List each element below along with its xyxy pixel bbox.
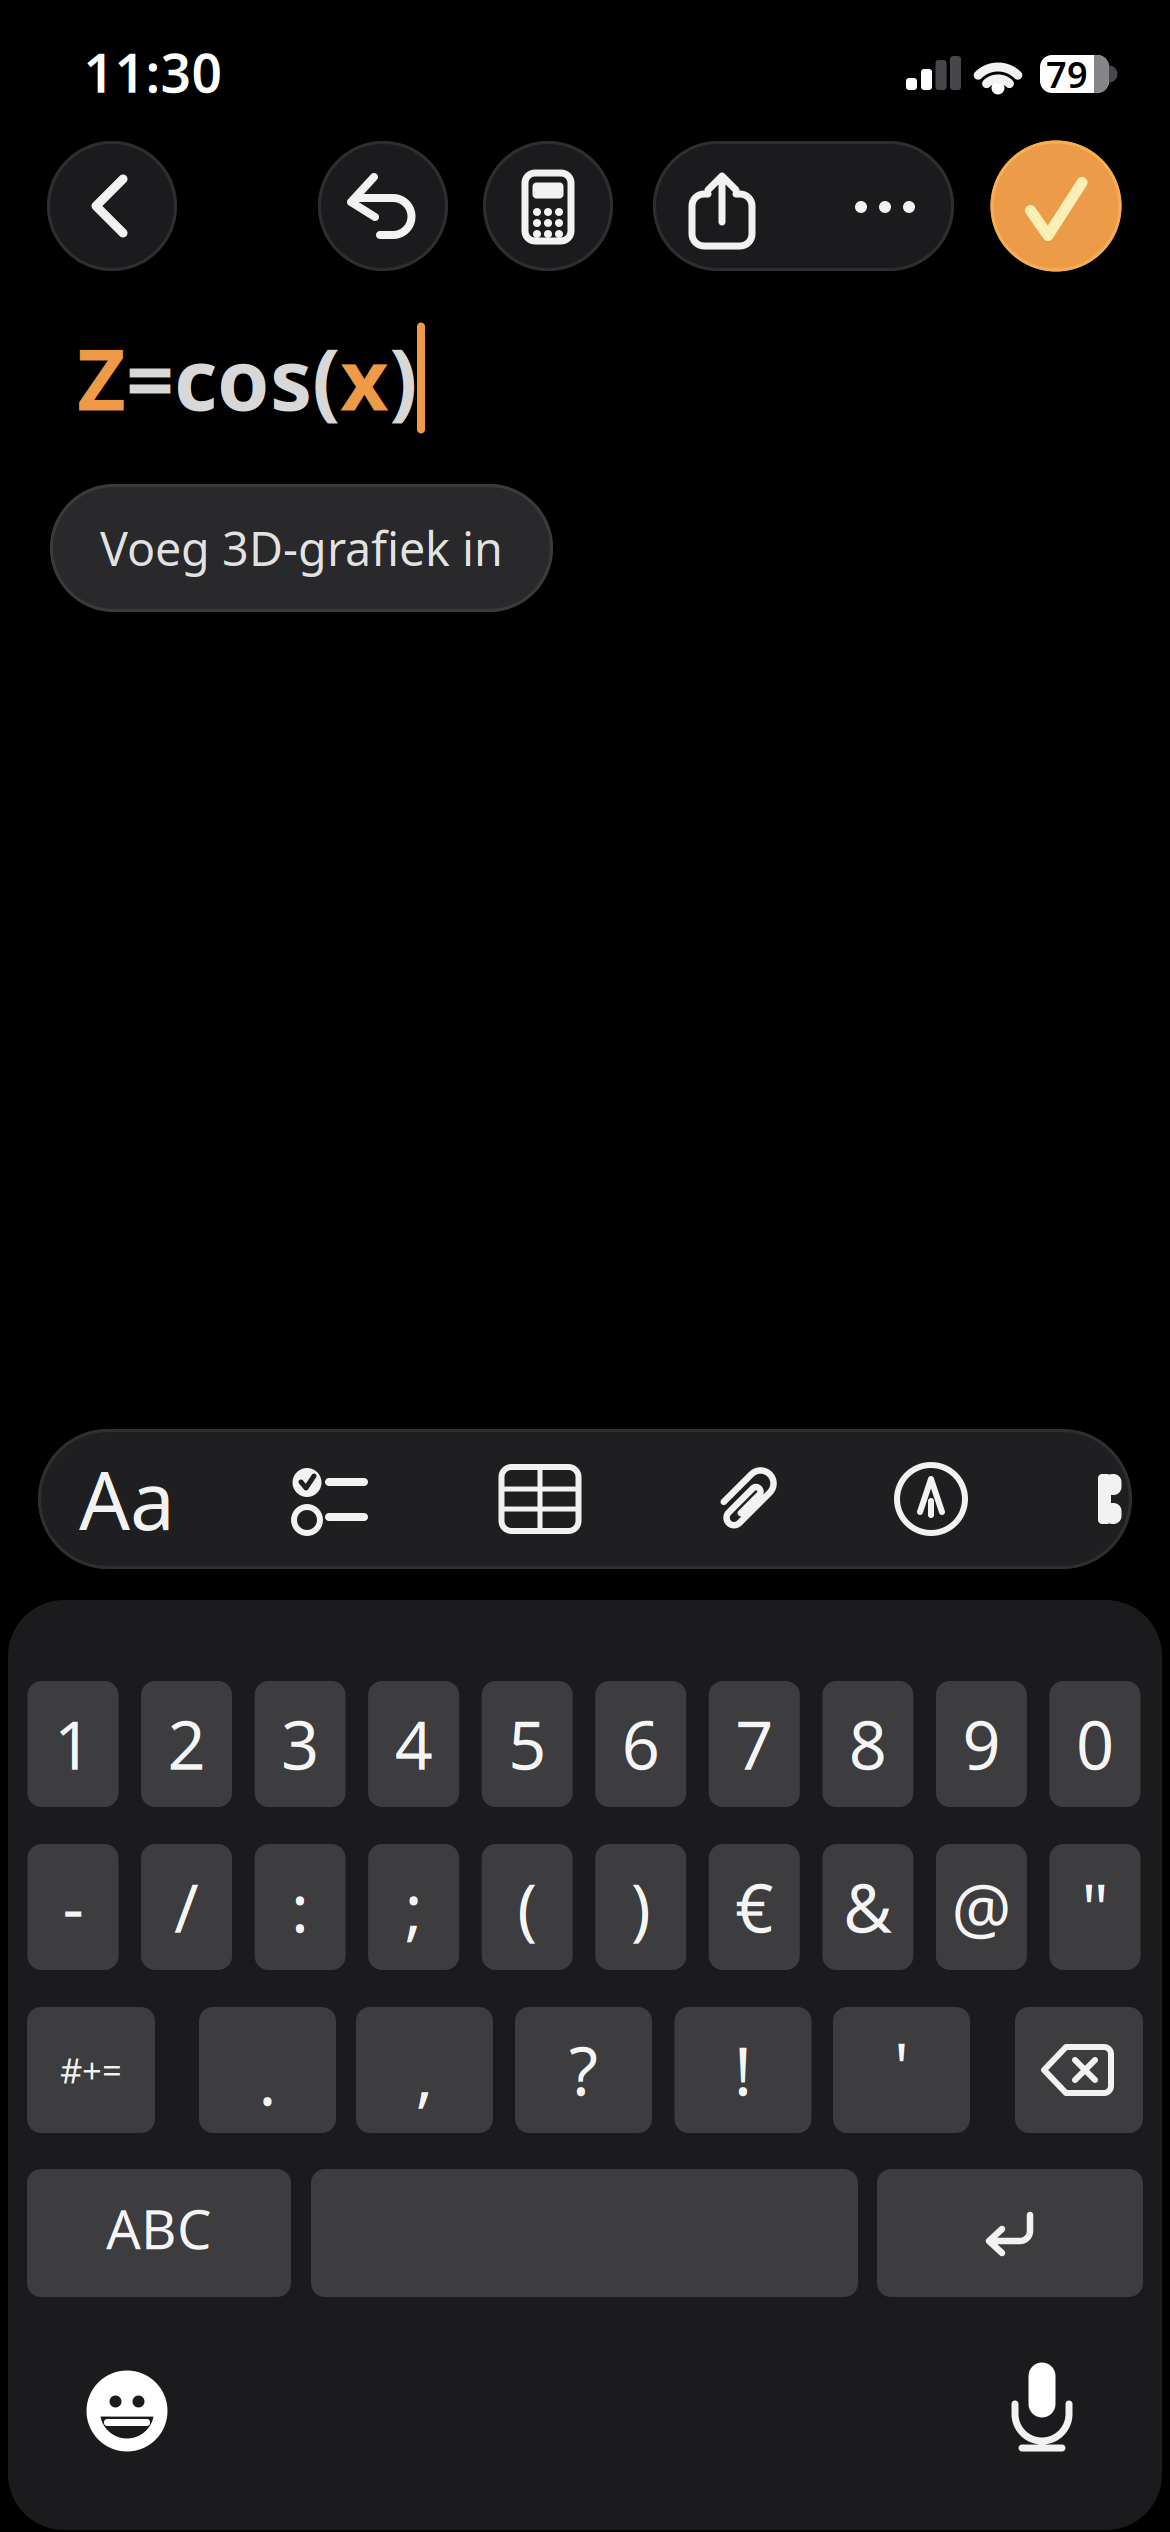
button[interactable]: #+=: [27, 2007, 155, 2133]
staticText: #+=: [60, 2047, 122, 2093]
button[interactable]: ': [833, 2007, 970, 2133]
button[interactable]: 8: [822, 1681, 913, 1807]
button[interactable]: Back: [47, 141, 177, 271]
staticText: ABC: [106, 2192, 212, 2264]
staticText: 4: [395, 1700, 433, 1788]
staticText: 1: [54, 1700, 92, 1788]
button[interactable]: 0: [1049, 1681, 1140, 1807]
button[interactable]: Table: [501, 1467, 578, 1531]
button[interactable]: Bold: [1098, 1474, 1126, 1524]
staticText: =cos(: [126, 322, 340, 434]
button[interactable]: Voeg 3D-grafiek in: [50, 484, 553, 612]
button[interactable]: Done: [990, 140, 1121, 271]
button[interactable]: @: [936, 1844, 1027, 1970]
button[interactable]: !: [674, 2007, 811, 2133]
staticText: 0: [1076, 1700, 1114, 1788]
staticText: €: [735, 1863, 773, 1951]
button[interactable]: (: [482, 1844, 573, 1970]
button[interactable]: 7: [709, 1681, 800, 1807]
button[interactable]: Dictate: [1010, 2362, 1074, 2454]
staticText: x: [340, 322, 389, 434]
button[interactable]: Markup: [897, 1465, 965, 1533]
button[interactable]: /: [141, 1844, 232, 1970]
button[interactable]: 4: [368, 1681, 459, 1807]
button[interactable]: ,: [356, 2007, 493, 2133]
button[interactable]: Undo: [318, 141, 448, 271]
button[interactable]: ): [595, 1844, 686, 1970]
button[interactable]: Delete: [1015, 2007, 1143, 2133]
button[interactable]: ": [1049, 1844, 1140, 1970]
button[interactable]: Attach: [704, 1458, 786, 1540]
staticText: -: [62, 1863, 83, 1951]
button[interactable]: 6: [595, 1681, 686, 1807]
staticText: 8: [849, 1700, 887, 1788]
button[interactable]: .: [199, 2007, 336, 2133]
staticText: Z: [77, 322, 126, 434]
staticText: 11:30: [83, 37, 222, 107]
button[interactable]: Return: [877, 2169, 1143, 2297]
staticText: 9: [962, 1700, 1000, 1788]
staticText: ?: [569, 2026, 598, 2114]
staticText: Voeg 3D-grafiek in: [100, 517, 503, 579]
staticText: ;: [405, 1863, 423, 1951]
staticText: 79: [1046, 50, 1088, 98]
staticText: 3: [281, 1700, 319, 1788]
staticText: /: [174, 1863, 199, 1951]
staticText: .: [258, 2036, 276, 2124]
staticText: !: [734, 2026, 752, 2114]
staticText: ): [631, 1863, 651, 1951]
button[interactable]: -: [27, 1844, 118, 1970]
button[interactable]: :: [255, 1844, 346, 1970]
staticText: ,: [415, 2030, 433, 2118]
staticText: :: [291, 1863, 309, 1951]
staticText: 7: [735, 1700, 773, 1788]
staticText: 5: [508, 1700, 546, 1788]
staticText: ): [389, 322, 417, 434]
button[interactable]: €: [709, 1844, 800, 1970]
button[interactable]: 9: [936, 1681, 1027, 1807]
button[interactable]: ;: [368, 1844, 459, 1970]
button[interactable]: More: [847, 174, 923, 240]
button[interactable]: &: [822, 1844, 913, 1970]
button[interactable]: 5: [482, 1681, 573, 1807]
button[interactable]: ?: [515, 2007, 652, 2133]
staticText: &: [843, 1863, 892, 1951]
staticText: @: [951, 1863, 1011, 1951]
staticText: ": [1081, 1863, 1108, 1951]
staticText: ': [894, 2022, 909, 2110]
staticText: 6: [622, 1700, 660, 1788]
button[interactable]: Emoji: [86, 2370, 167, 2451]
button[interactable]: 3: [255, 1681, 346, 1807]
staticText: (: [517, 1863, 537, 1951]
button[interactable]: 2: [141, 1681, 232, 1807]
button[interactable]: Calculator: [483, 141, 613, 271]
staticText: Aa: [79, 1446, 175, 1552]
button[interactable]: Format: [47, 1429, 207, 1569]
staticText: 2: [168, 1700, 206, 1788]
button[interactable]: 1: [27, 1681, 118, 1807]
button[interactable]: ABC: [27, 2169, 291, 2297]
button[interactable]: Share: [662, 137, 782, 267]
button[interactable]: Checklist: [292, 1467, 372, 1537]
